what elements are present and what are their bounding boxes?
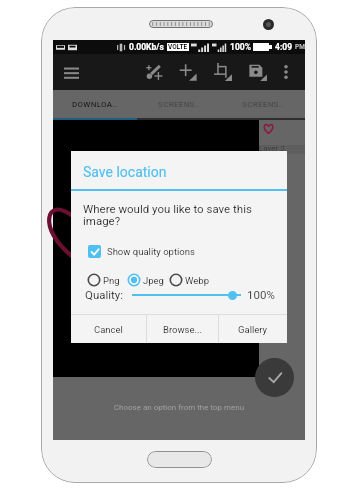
button[interactable]: SCREENS..	[221, 100, 305, 109]
button[interactable]: Crop	[210, 59, 236, 85]
staticText: 100%	[230, 42, 251, 52]
staticText: Choose an option from the top menu	[53, 403, 305, 412]
staticText: 0.00Kb/s	[129, 42, 164, 52]
button[interactable]: Show quality options	[88, 244, 195, 259]
staticText: Quality:	[85, 288, 124, 301]
staticText: Layer 2	[259, 144, 285, 153]
button[interactable]: Png	[87, 273, 120, 287]
button[interactable]: Add	[175, 59, 201, 85]
staticText: 4:09	[275, 42, 293, 52]
staticText: DOWNLOA..	[72, 100, 118, 109]
staticText: Gallery	[238, 324, 268, 335]
staticText: SCREENS..	[158, 100, 200, 109]
button[interactable]: Effects	[140, 59, 166, 85]
staticText: Show quality options	[107, 246, 195, 257]
button[interactable]: Gallery	[219, 315, 287, 343]
staticText: PM	[295, 43, 305, 51]
button[interactable]: More options	[272, 58, 300, 86]
staticText: Png	[103, 275, 120, 286]
staticText: SCREENS..	[242, 100, 284, 109]
button[interactable]: Save	[245, 59, 271, 85]
staticText: VOLTE	[168, 43, 188, 51]
staticText: Jpeg	[143, 275, 164, 286]
staticText: Where would you like to save this image?	[83, 202, 261, 228]
staticText: Save location	[83, 164, 167, 180]
button[interactable]: SCREENS..	[137, 100, 221, 109]
button[interactable]: Jpeg	[127, 273, 164, 287]
button[interactable]: Browse...	[147, 315, 218, 343]
staticText: Webp	[185, 275, 209, 286]
button[interactable]: Apply	[255, 358, 294, 397]
button[interactable]: Cancel	[71, 315, 146, 343]
staticText: Cancel	[94, 324, 123, 335]
button[interactable]: DOWNLOA..	[53, 100, 137, 109]
staticText: Browse...	[163, 324, 203, 335]
staticText: 100%	[247, 288, 275, 301]
button[interactable]: Webp	[169, 273, 209, 287]
button[interactable]: Menu	[53, 54, 89, 90]
